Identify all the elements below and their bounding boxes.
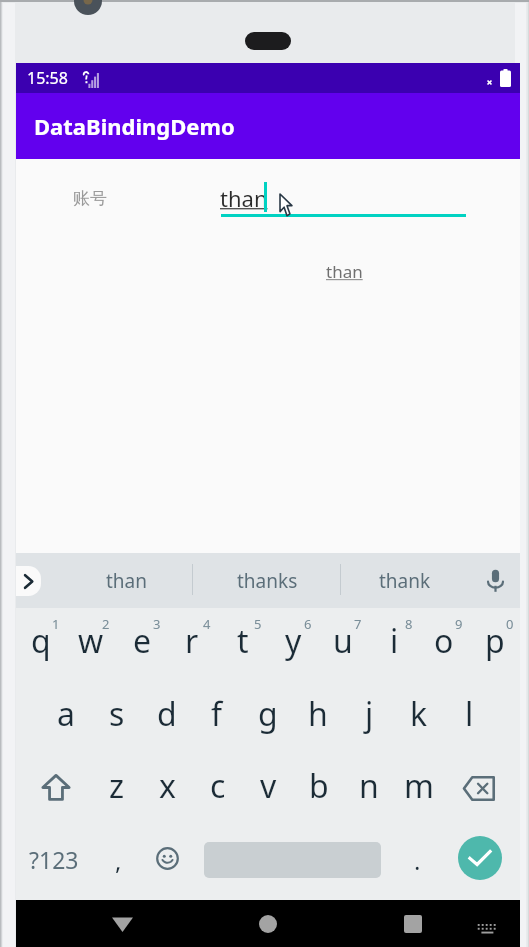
staticText: 账号 — [73, 188, 107, 209]
button[interactable]: than — [62, 553, 192, 608]
button[interactable]: thanks — [202, 553, 332, 608]
button[interactable]: thank — [344, 553, 466, 608]
staticText: m — [404, 764, 434, 808]
staticText: d — [157, 692, 177, 736]
button[interactable]: 7 — [318, 598, 368, 672]
staticText: thank — [379, 568, 431, 594]
button[interactable]: Voice input — [475, 553, 515, 608]
button[interactable]: 1 — [16, 598, 66, 672]
button[interactable]: . — [394, 823, 440, 893]
button[interactable]: Emoji — [142, 823, 192, 893]
staticText: x — [159, 764, 176, 808]
button[interactable]: Done — [442, 824, 518, 892]
staticText: b — [309, 764, 329, 808]
staticText: i — [390, 619, 399, 663]
staticText: c — [210, 764, 226, 808]
button[interactable]: , — [94, 823, 142, 893]
button[interactable]: Back — [92, 900, 152, 947]
staticText: 5 — [254, 615, 262, 633]
button[interactable]: k — [394, 678, 444, 750]
staticText: thanks — [237, 568, 298, 594]
button[interactable]: f — [192, 678, 242, 750]
button[interactable]: x — [142, 750, 192, 822]
staticText: 6 — [304, 615, 312, 633]
button[interactable]: s — [92, 678, 142, 750]
button[interactable]: 9 — [419, 598, 469, 672]
staticText: DataBindingDemo — [34, 111, 235, 141]
button[interactable]: Switch keyboard — [457, 900, 513, 947]
staticText: than — [106, 568, 148, 594]
staticText: 0 — [506, 615, 514, 633]
staticText: 8 — [405, 615, 413, 633]
button[interactable]: 5 — [218, 598, 268, 672]
button[interactable]: d — [142, 678, 192, 750]
staticText: 7 — [354, 615, 362, 633]
button[interactable]: h — [293, 678, 343, 750]
button[interactable]: j — [344, 678, 394, 750]
staticText: 1 — [52, 615, 60, 633]
button[interactable]: n — [344, 750, 394, 822]
staticText: 2 — [102, 615, 110, 633]
button[interactable]: m — [394, 750, 444, 822]
staticText: v — [260, 764, 277, 808]
button[interactable]: ?123 — [16, 823, 94, 893]
staticText: e — [133, 619, 152, 663]
button[interactable]: Recent apps — [383, 900, 443, 947]
button[interactable]: g — [243, 678, 293, 750]
button[interactable]: 8 — [369, 598, 419, 672]
staticText: u — [333, 619, 353, 663]
staticText: 3 — [153, 615, 161, 633]
staticText: 4 — [203, 615, 211, 633]
staticText: p — [485, 619, 505, 663]
button[interactable]: 4 — [167, 598, 217, 672]
staticText: s — [109, 692, 125, 736]
button[interactable]: b — [294, 750, 344, 822]
staticText: n — [359, 764, 379, 808]
staticText: than — [326, 260, 363, 283]
staticText: , — [115, 844, 122, 877]
button[interactable]: v — [243, 750, 293, 822]
button[interactable]: Shift — [16, 750, 92, 822]
staticText: k — [410, 692, 428, 736]
staticText: o — [434, 619, 454, 663]
staticText: a — [57, 692, 75, 736]
staticText: 15:58 — [27, 67, 68, 89]
button[interactable]: a — [41, 678, 91, 750]
staticText: j — [365, 692, 374, 736]
button[interactable]: z — [92, 750, 142, 822]
staticText: r — [185, 619, 199, 663]
button[interactable]: Home — [238, 900, 298, 947]
staticText: f — [211, 692, 223, 736]
staticText: w — [78, 619, 104, 663]
button[interactable]: c — [193, 750, 243, 822]
button[interactable]: Show more suggestions — [16, 566, 41, 596]
button[interactable]: 6 — [268, 598, 318, 672]
button[interactable]: 0 — [470, 598, 520, 672]
staticText: t — [237, 619, 249, 663]
staticText: g — [258, 692, 278, 736]
staticText: y — [285, 619, 302, 663]
staticText: l — [465, 692, 474, 736]
button[interactable]: l — [444, 678, 494, 750]
staticText: h — [308, 692, 328, 736]
staticText: than — [220, 183, 268, 213]
button[interactable]: 2 — [66, 598, 116, 672]
staticText: 9 — [455, 615, 463, 633]
staticText: q — [31, 619, 51, 663]
button[interactable]: 3 — [117, 598, 167, 672]
button[interactable]: DataBindingDemo — [16, 93, 520, 159]
staticText: z — [109, 764, 125, 808]
staticText: ?123 — [29, 844, 79, 875]
button[interactable]: Backspace — [444, 750, 520, 822]
staticText: . — [414, 844, 421, 877]
